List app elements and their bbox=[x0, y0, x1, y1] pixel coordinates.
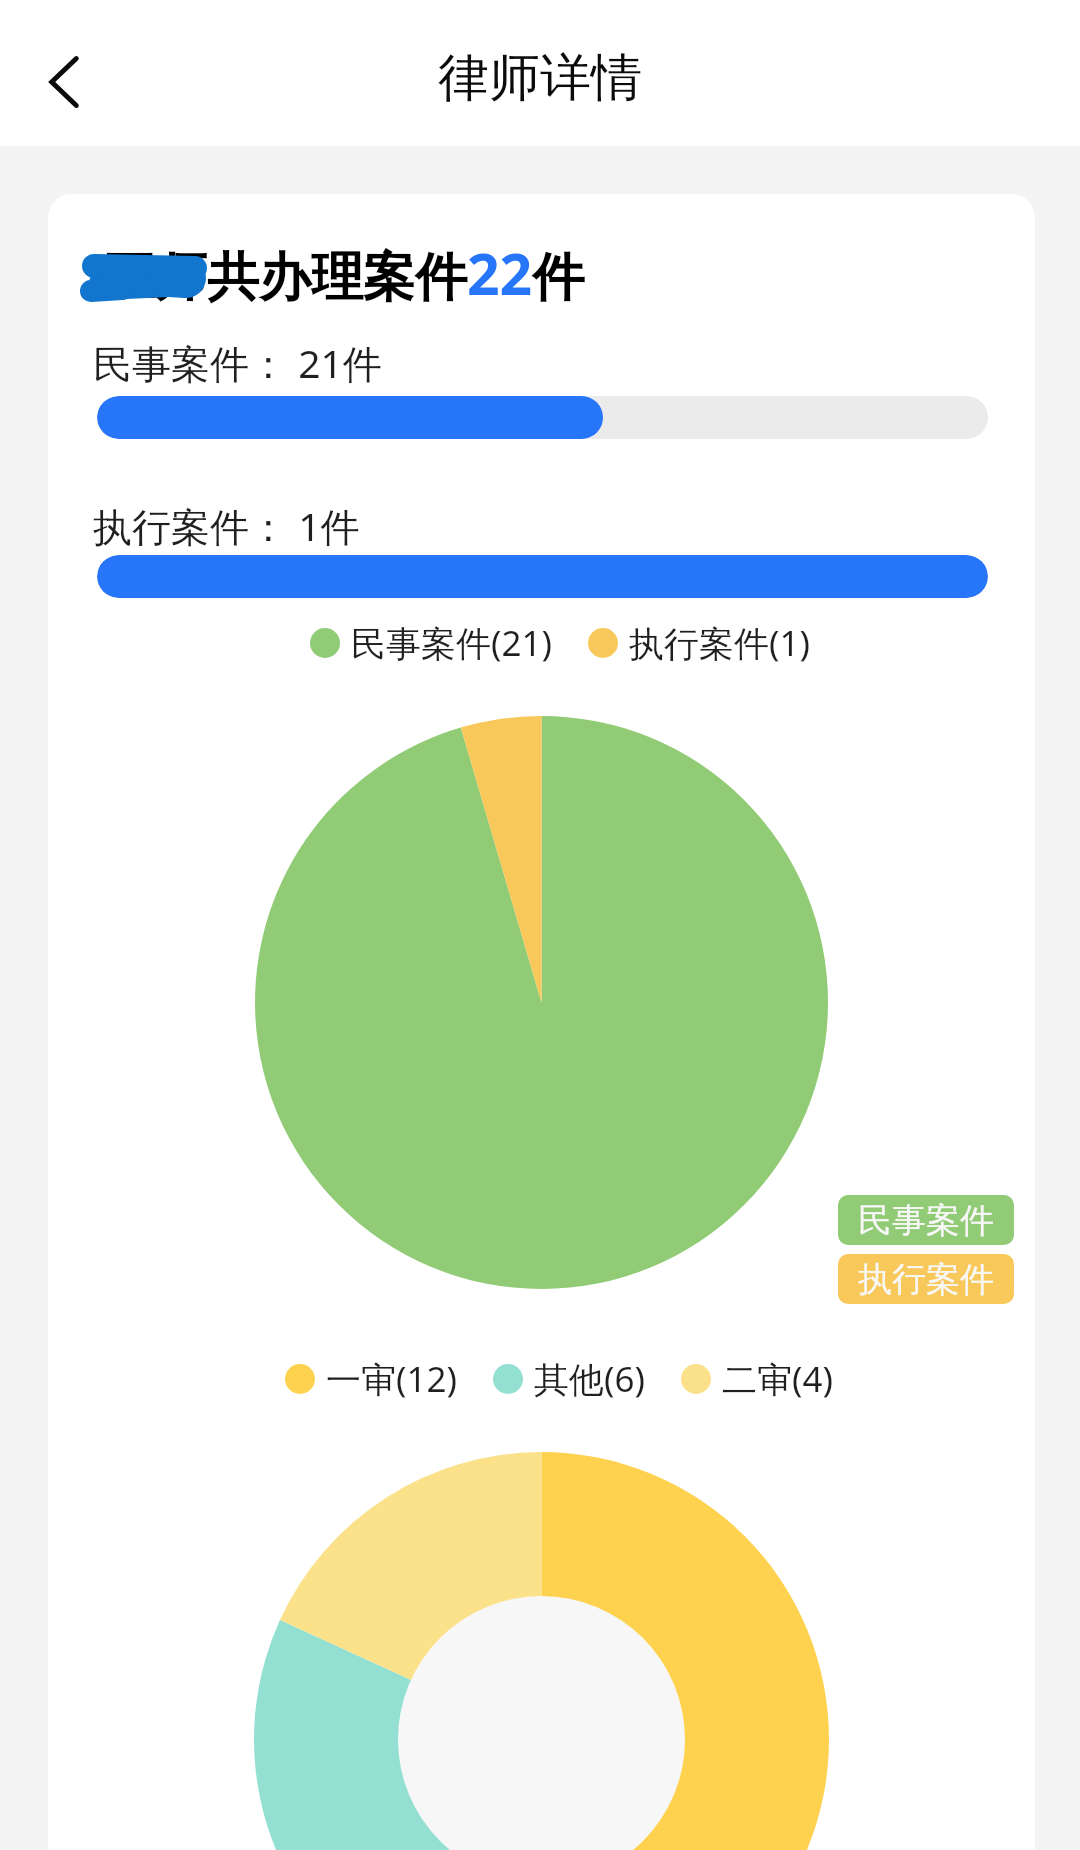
button[interactable]: 民事案件 bbox=[838, 1195, 1014, 1245]
button[interactable]: 二审(4) bbox=[681, 1355, 834, 1403]
staticText: 民事案件 bbox=[858, 1199, 994, 1242]
button[interactable]: 一审(12) bbox=[285, 1355, 458, 1403]
staticText: 民事案件： 21件 bbox=[93, 336, 382, 389]
staticText: 王师共办理案件22件 bbox=[103, 234, 585, 312]
button[interactable]: 执行案件(1) bbox=[588, 619, 811, 667]
staticText: 民事案件(21) bbox=[351, 619, 553, 667]
staticText: 执行案件： 1件 bbox=[93, 499, 360, 552]
staticText: 执行案件 bbox=[858, 1258, 994, 1301]
button[interactable]: 执行案件 bbox=[838, 1254, 1014, 1304]
staticText: 执行案件(1) bbox=[629, 619, 811, 667]
button[interactable]: 其他(6) bbox=[493, 1355, 646, 1403]
staticText: 二审(4) bbox=[722, 1355, 834, 1403]
button[interactable]: Back bbox=[20, 37, 94, 111]
button[interactable]: 民事案件(21) bbox=[310, 619, 553, 667]
staticText: 其他(6) bbox=[534, 1355, 646, 1403]
staticText: 一审(12) bbox=[326, 1355, 458, 1403]
staticText: 律师详情 bbox=[438, 46, 642, 110]
